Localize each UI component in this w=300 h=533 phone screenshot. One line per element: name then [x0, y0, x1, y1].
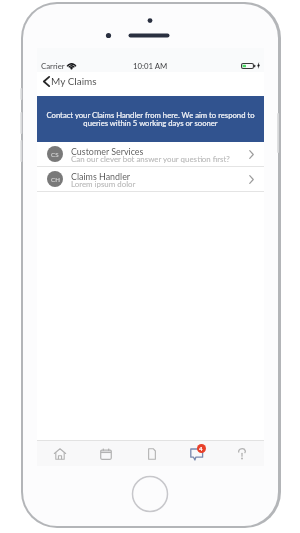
other: Back	[43, 76, 50, 87]
staticText: 10:01 AM	[133, 61, 168, 70]
button[interactable]: CH	[37, 167, 264, 192]
button[interactable]: Calendar	[83, 441, 129, 466]
staticText: CH	[51, 176, 60, 183]
button[interactable]: Messages, 4 unread	[174, 441, 219, 466]
button[interactable]: Help	[219, 441, 264, 466]
staticText: Lorem ipsum dolor	[71, 179, 136, 188]
staticText: Carrier	[41, 61, 65, 70]
staticText: CS	[51, 151, 59, 158]
staticText: My Claims	[51, 75, 97, 87]
button[interactable]: Back	[37, 72, 103, 96]
button[interactable]: Home	[37, 441, 83, 466]
staticText: Claims Handler	[71, 171, 131, 182]
staticText: Contact your Claims Handler from here. W…	[45, 110, 256, 128]
staticText: 4	[199, 445, 203, 452]
staticText: Customer Services	[71, 146, 144, 157]
button[interactable]: Documents	[129, 441, 174, 466]
staticText: Can our clever bot answer your question …	[71, 154, 230, 163]
button[interactable]: CS	[37, 142, 264, 167]
